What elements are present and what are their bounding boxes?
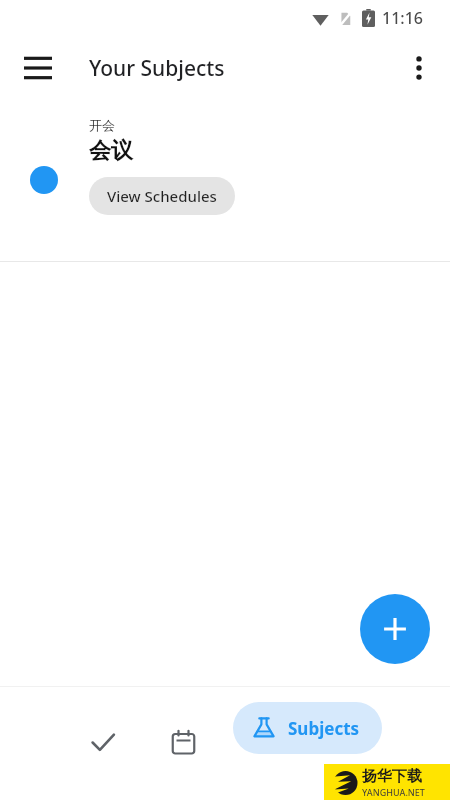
- button[interactable]: 开会: [0, 100, 450, 261]
- button[interactable]: Subjects: [233, 702, 382, 754]
- button[interactable]: View Schedules: [89, 177, 235, 215]
- staticText: YANGHUA.NET: [362, 786, 425, 798]
- button[interactable]: Timetable: [153, 712, 213, 772]
- staticText: 扬华下载: [362, 767, 422, 786]
- button[interactable]: Open navigation menu: [10, 40, 66, 96]
- staticText: 11:16: [382, 7, 423, 29]
- staticText: Subjects: [288, 717, 360, 740]
- button[interactable]: Add subject: [360, 594, 430, 664]
- button[interactable]: More options: [393, 42, 445, 94]
- staticText: 开会: [89, 117, 115, 133]
- staticText: View Schedules: [107, 186, 217, 206]
- staticText: 会议: [89, 137, 133, 165]
- button[interactable]: Tasks: [73, 712, 133, 772]
- staticText: Your Subjects: [89, 54, 225, 83]
